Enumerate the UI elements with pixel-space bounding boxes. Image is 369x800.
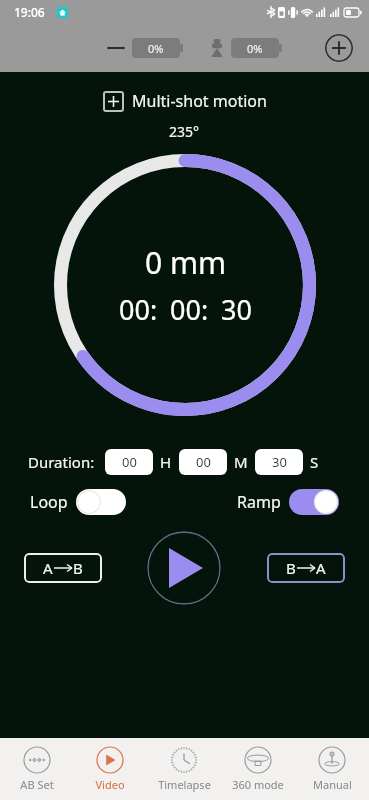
staticText: 19:06 <box>14 4 45 20</box>
button[interactable]: A <box>24 553 102 583</box>
staticText: A <box>43 558 53 578</box>
staticText: Loop <box>30 491 68 513</box>
staticText: 00 <box>196 453 211 471</box>
staticText: 0% <box>148 41 164 56</box>
staticText: 00: <box>170 291 209 328</box>
staticText: S <box>310 452 319 472</box>
button[interactable]: 360 mode <box>221 738 295 800</box>
staticText: A <box>316 558 326 578</box>
staticText: Manual <box>313 777 352 792</box>
staticText: Ramp <box>237 491 281 513</box>
button[interactable]: 30 <box>255 449 303 475</box>
button[interactable]: 00 <box>179 449 227 475</box>
staticText: Duration: <box>28 452 95 472</box>
staticText: 30 <box>272 453 287 471</box>
staticText: Video <box>95 777 125 792</box>
button[interactable]: Ramp <box>237 489 339 515</box>
staticText: 0% <box>247 41 263 56</box>
staticText: B <box>73 558 83 578</box>
staticText: 235° <box>169 122 200 141</box>
staticText: B <box>286 558 296 578</box>
button[interactable]: Manual <box>295 738 369 800</box>
button[interactable]: Loop <box>30 489 126 515</box>
staticText: M <box>234 452 248 472</box>
staticText: 0 mm <box>145 242 227 283</box>
staticText: Multi-shot motion <box>132 90 267 112</box>
button[interactable]: 00 <box>105 449 153 475</box>
staticText: 00 <box>122 453 137 471</box>
staticText: Timelapse <box>158 777 211 792</box>
staticText: 30 <box>221 291 252 328</box>
button[interactable]: Multi-shot motion <box>103 90 267 112</box>
staticText: AB Set <box>20 777 54 792</box>
button[interactable]: AB Set <box>0 738 73 800</box>
button[interactable]: Play <box>147 531 221 605</box>
button[interactable]: Video <box>73 738 147 800</box>
button[interactable]: Timelapse <box>147 738 221 800</box>
staticText: 360 mode <box>232 777 284 792</box>
button[interactable]: Add device <box>325 34 353 62</box>
button[interactable]: B <box>267 553 345 583</box>
staticText: H <box>160 452 172 472</box>
staticText: 00: <box>119 291 158 328</box>
